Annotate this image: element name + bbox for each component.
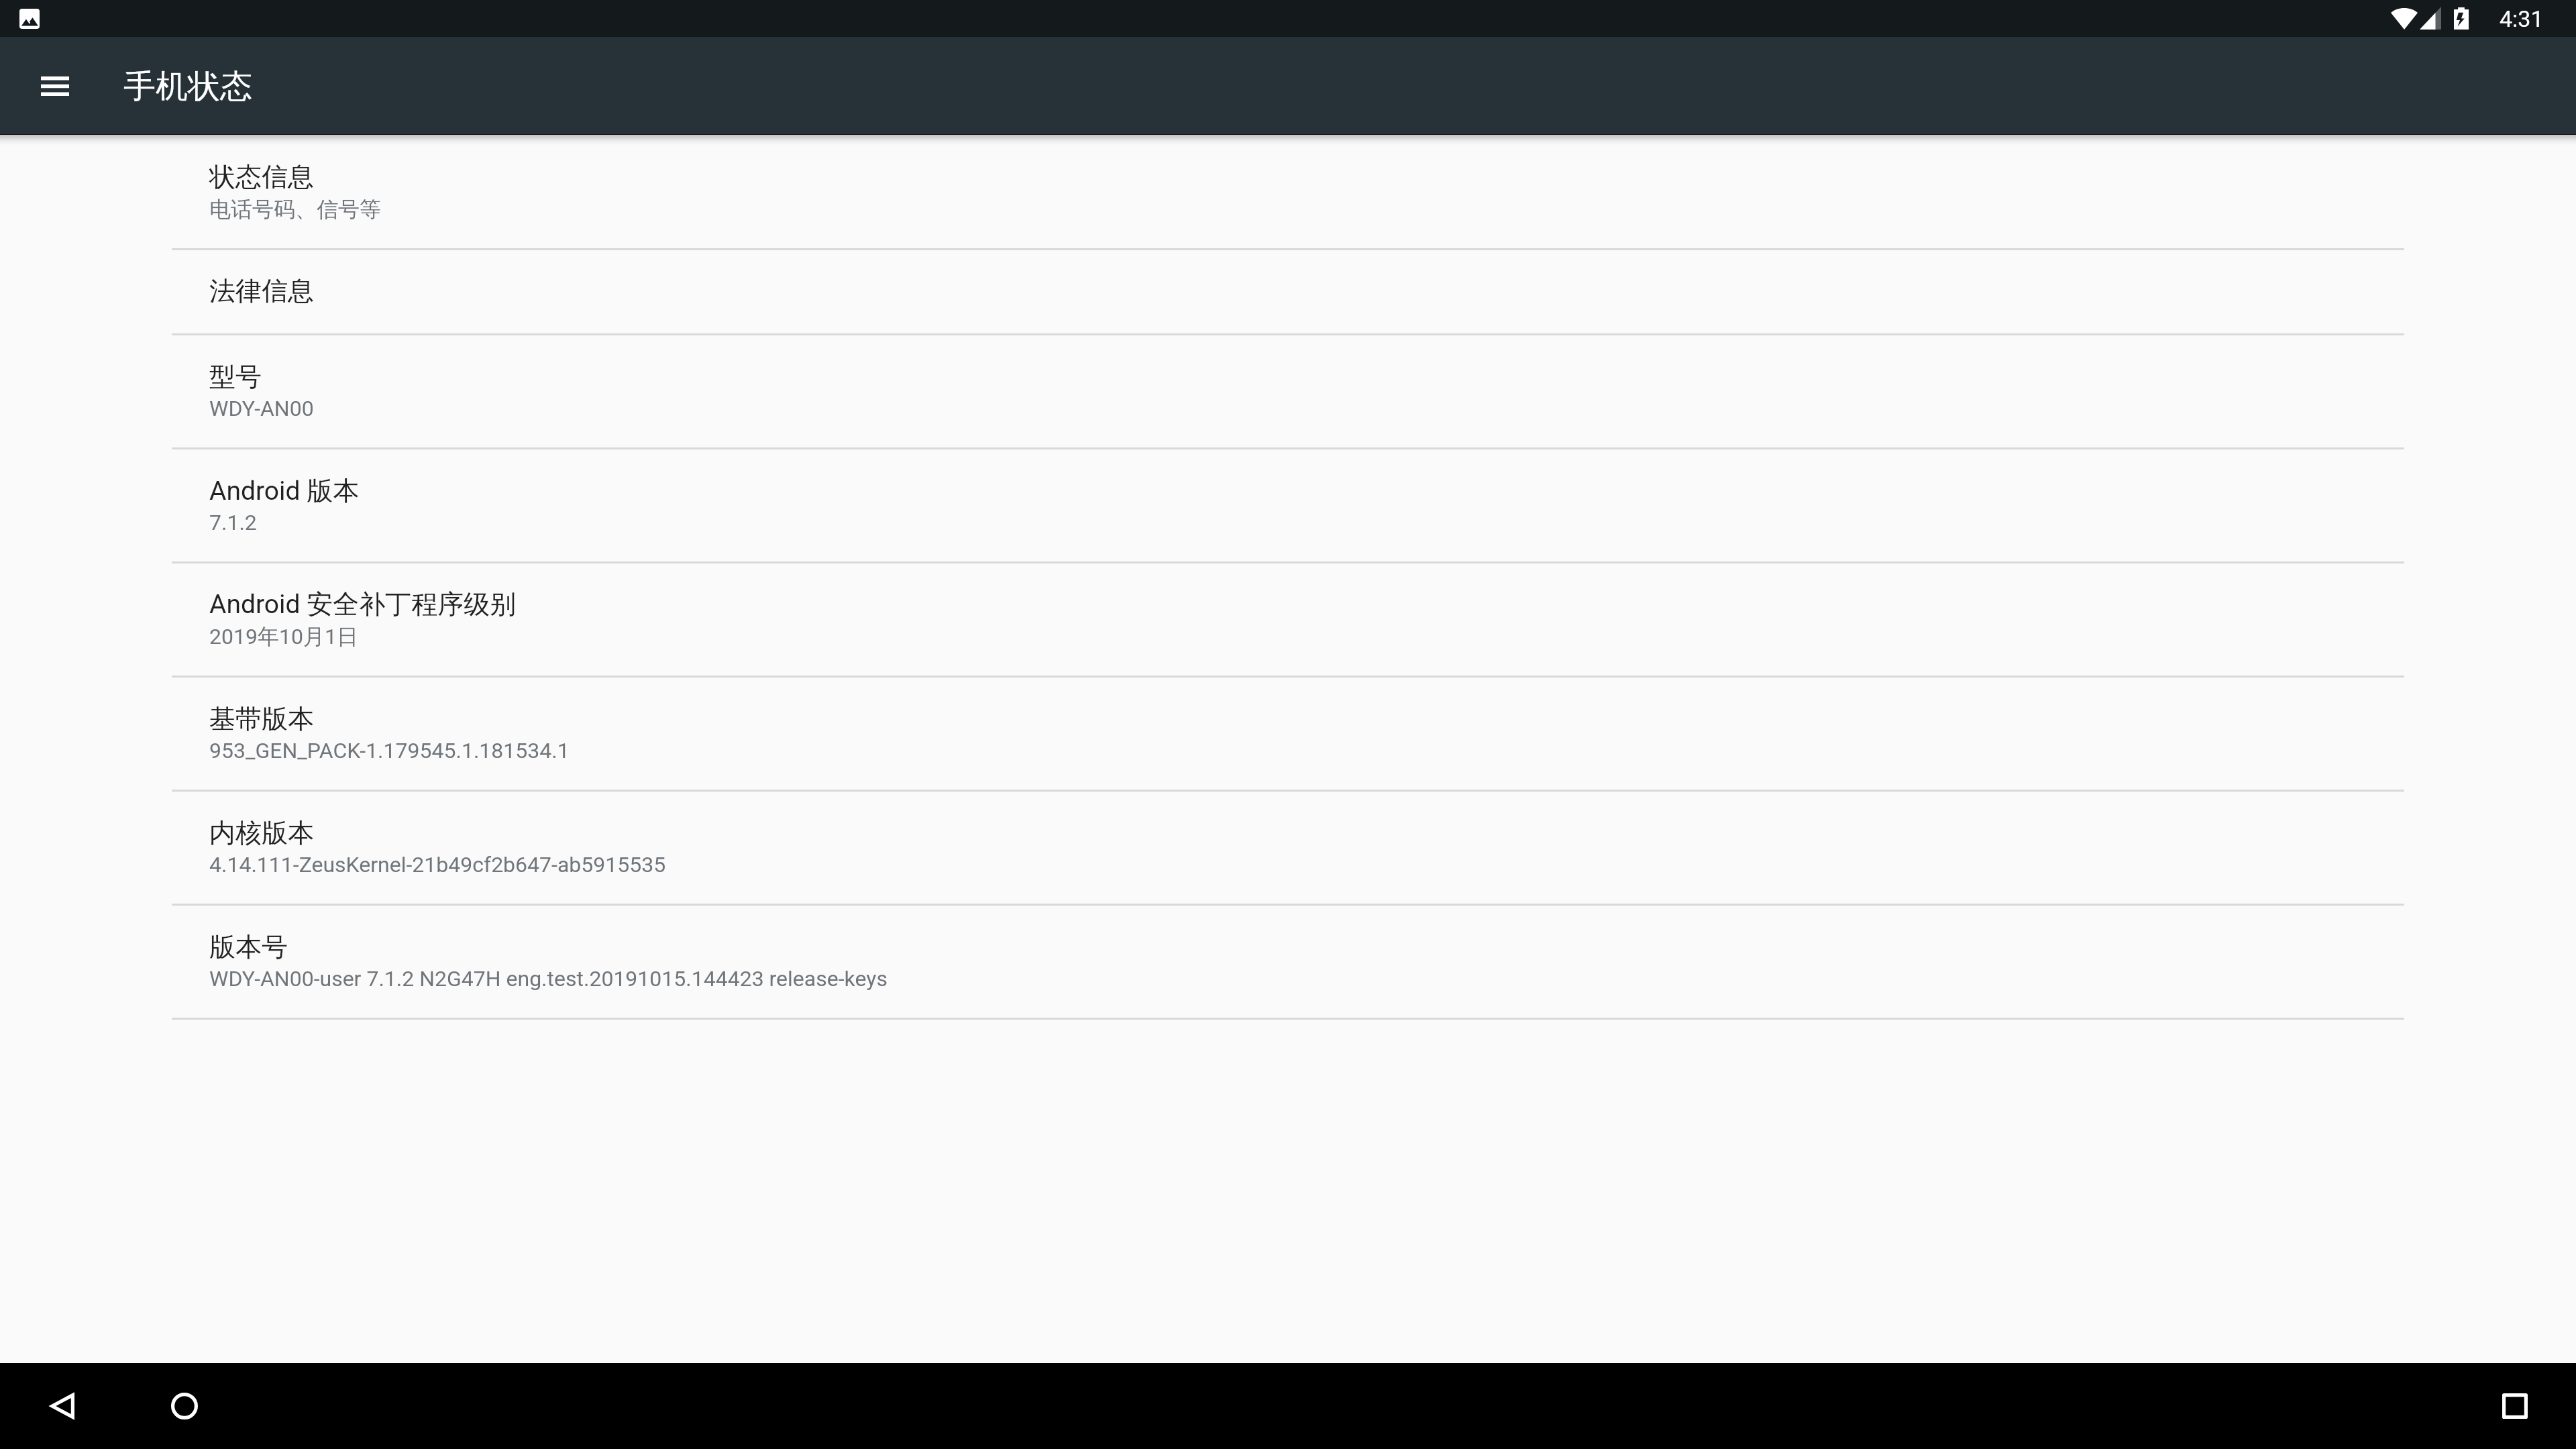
button[interactable]: 版本号 [172, 906, 2404, 1020]
button[interactable]: Back [32, 1376, 92, 1436]
button[interactable]: 内核版本 [172, 792, 2404, 906]
staticText: WDY-AN00-user 7.1.2 N2G47H eng.test.2019… [209, 966, 888, 991]
staticText: 状态信息 [209, 160, 314, 193]
button[interactable]: Android 安全补丁程序级别 [172, 563, 2404, 678]
staticText: 4:31 [2500, 5, 2544, 32]
staticText: 基带版本 [209, 702, 314, 735]
staticText: 4.14.111-ZeusKernel-21b49cf2b647-ab59155… [209, 852, 666, 877]
button[interactable]: Open navigation menu [25, 56, 85, 116]
staticText: 2019年10月1日 [209, 623, 358, 650]
staticText: 953_GEN_PACK-1.179545.1.181534.1 [209, 738, 570, 763]
button[interactable]: Home [154, 1376, 215, 1436]
staticText: 7.1.2 [209, 510, 257, 535]
staticText: WDY-AN00 [209, 396, 314, 421]
button[interactable]: 基带版本 [172, 678, 2404, 792]
staticText: Android 版本 [209, 474, 360, 507]
button[interactable]: 法律信息 [172, 250, 2404, 335]
staticText: 法律信息 [209, 274, 314, 307]
button[interactable]: 型号 [172, 335, 2404, 449]
staticText: 手机状态 [123, 66, 252, 107]
staticText: 电话号码、信号等 [209, 196, 381, 223]
button[interactable]: Recent apps [2485, 1376, 2545, 1436]
other: Screenshot captured [19, 9, 40, 29]
staticText: 版本号 [209, 930, 288, 963]
staticText: 型号 [209, 360, 262, 393]
button[interactable]: 状态信息 [172, 136, 2404, 250]
button[interactable]: Android 版本 [172, 449, 2404, 563]
staticText: Android 安全补丁程序级别 [209, 588, 517, 621]
staticText: 内核版本 [209, 816, 314, 849]
